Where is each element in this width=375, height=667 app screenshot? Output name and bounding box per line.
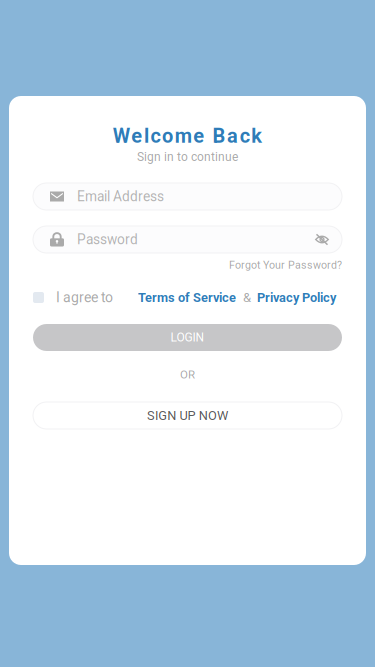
- button[interactable]: Privacy Policy: [251, 290, 336, 305]
- button[interactable]: SIGN UP NOW: [33, 402, 342, 429]
- staticText: Password: [77, 231, 138, 248]
- staticText: Welcome Back: [113, 124, 262, 148]
- staticText: LOGIN: [170, 330, 204, 345]
- staticText: Privacy Policy: [257, 290, 336, 305]
- staticText: OR: [180, 368, 195, 381]
- staticText: Sign in to continue: [137, 150, 238, 164]
- button[interactable]: Email Address: [33, 183, 342, 210]
- staticText: Email Address: [77, 188, 164, 205]
- staticText: &: [243, 290, 251, 305]
- staticText: Terms of Service: [138, 290, 236, 305]
- staticText: SIGN UP NOW: [147, 408, 228, 423]
- staticText: Forgot Your Password?: [229, 259, 342, 271]
- button[interactable]: Forgot Your Password?: [33, 259, 342, 271]
- button[interactable]: LOGIN: [33, 324, 342, 351]
- button[interactable]: Password: [33, 226, 342, 253]
- button[interactable]: I agree to the terms: [33, 292, 44, 303]
- button[interactable]: Terms of Service: [113, 290, 236, 305]
- staticText: I agree to: [56, 289, 113, 306]
